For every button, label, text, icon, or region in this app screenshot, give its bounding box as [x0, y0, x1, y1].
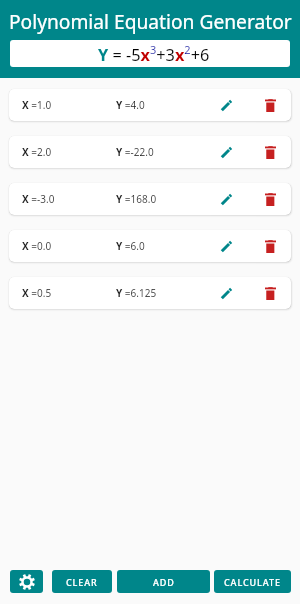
button[interactable]: X =0.0 [9, 230, 291, 262]
staticText: Y =168.0 [116, 192, 157, 206]
button[interactable]: Edit [214, 136, 240, 168]
staticText: CALCULATE [224, 576, 281, 588]
staticText: Polynomial Equation Generator [9, 8, 292, 34]
button[interactable]: Edit [214, 277, 240, 309]
staticText: X =0.0 [22, 239, 52, 253]
staticText: Y =6.0 [116, 239, 145, 253]
staticText: ADD [153, 576, 175, 588]
button[interactable]: Settings [10, 570, 43, 593]
staticText: CLEAR [66, 576, 98, 588]
button[interactable]: Edit [214, 230, 240, 262]
staticText: Y =4.0 [116, 98, 145, 112]
button[interactable]: X =-3.0 [9, 183, 291, 215]
button[interactable]: Delete [257, 183, 283, 215]
staticText: Y =-22.0 [116, 145, 154, 159]
button[interactable]: Delete [257, 230, 283, 262]
staticText: Y =6.125 [116, 286, 157, 300]
staticText: X =-3.0 [22, 192, 55, 206]
button[interactable]: CALCULATE [214, 570, 291, 593]
button[interactable]: X =2.0 [9, 136, 291, 168]
staticText: X =0.5 [22, 286, 52, 300]
staticText: Y = -5x3+3x2+6 [98, 42, 210, 65]
button[interactable]: X =0.5 [9, 277, 291, 309]
button[interactable]: X =1.0 [9, 89, 291, 121]
button[interactable]: Edit [214, 89, 240, 121]
button[interactable]: Edit [214, 183, 240, 215]
button[interactable]: Delete [257, 89, 283, 121]
staticText: X =1.0 [22, 98, 52, 112]
button[interactable]: CLEAR [52, 570, 112, 593]
staticText: X =2.0 [22, 145, 52, 159]
button[interactable]: Delete [257, 277, 283, 309]
button[interactable]: Delete [257, 136, 283, 168]
button[interactable]: ADD [117, 570, 210, 593]
